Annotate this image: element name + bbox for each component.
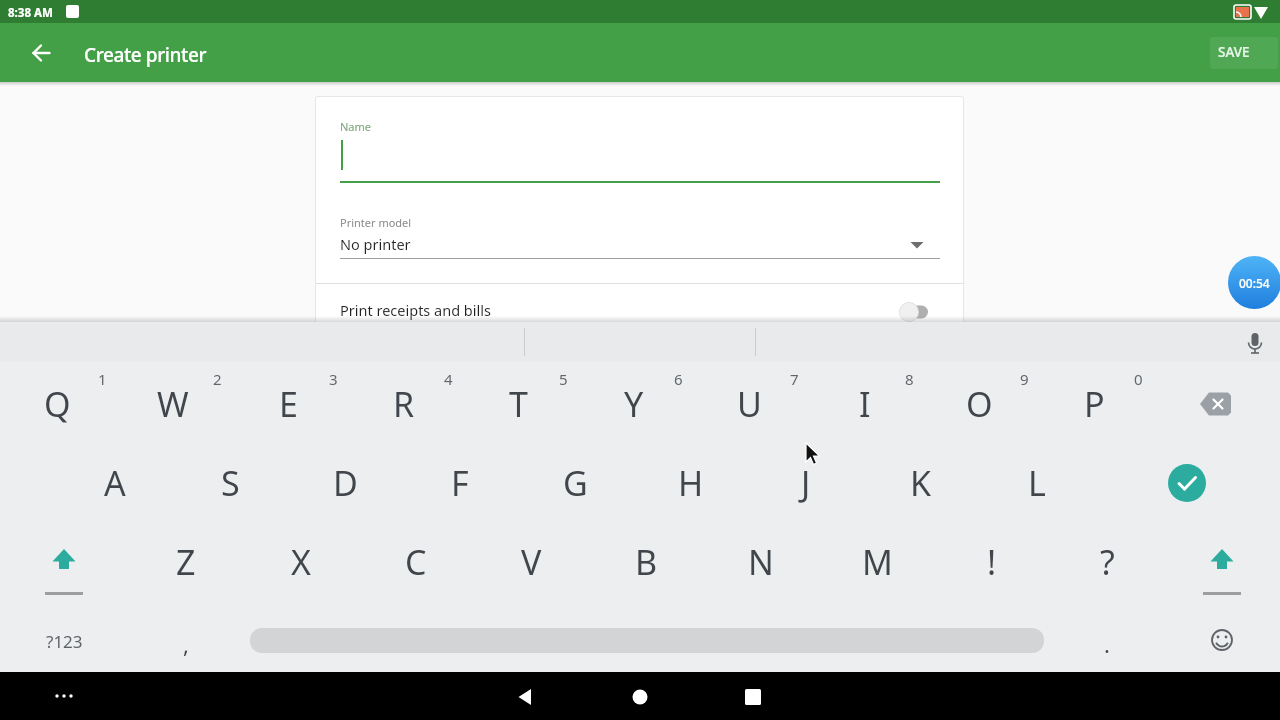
staticText: U <box>737 381 762 427</box>
button[interactable] <box>340 210 940 262</box>
staticText: F <box>451 460 469 506</box>
staticText: Print receipts and bills <box>340 300 491 320</box>
staticText: Y <box>624 381 644 427</box>
button[interactable] <box>44 676 84 716</box>
staticText: J <box>801 460 811 506</box>
button[interactable]: Y <box>577 366 691 442</box>
staticText: . <box>1104 629 1110 659</box>
button[interactable]: L <box>980 445 1094 521</box>
staticText: 00:54 <box>1239 275 1270 291</box>
button[interactable] <box>1159 455 1215 511</box>
button[interactable]: Z <box>129 524 243 600</box>
staticText: L <box>1028 460 1046 506</box>
staticText: Name <box>340 119 372 134</box>
button[interactable]: ?123 <box>19 611 109 671</box>
staticText: 9 <box>1020 369 1029 389</box>
staticText: 7 <box>790 369 799 389</box>
staticText: E <box>279 381 298 427</box>
staticText: M <box>862 539 893 585</box>
staticText: I <box>859 381 871 427</box>
button[interactable] <box>340 120 940 180</box>
button[interactable]: Q <box>0 366 114 442</box>
button[interactable]: I <box>808 366 922 442</box>
button[interactable]: M <box>820 524 934 600</box>
button[interactable]: V <box>474 524 588 600</box>
button[interactable]: U <box>692 366 806 442</box>
staticText: X <box>291 539 311 585</box>
staticText: S <box>221 460 240 506</box>
staticText: ?123 <box>46 630 83 653</box>
button[interactable]: X <box>244 524 358 600</box>
staticText: 0 <box>1134 369 1143 389</box>
button[interactable]: R <box>347 366 461 442</box>
button[interactable] <box>504 674 550 718</box>
staticText: D <box>333 460 358 506</box>
button[interactable]: S <box>173 445 287 521</box>
staticText: Q <box>44 381 71 427</box>
staticText: K <box>910 460 932 506</box>
staticText: 1 <box>98 369 107 389</box>
button[interactable]: P <box>1037 366 1151 442</box>
staticText: Z <box>176 539 196 585</box>
button[interactable]: T <box>461 366 575 442</box>
staticText: C <box>405 539 427 585</box>
staticText: O <box>966 381 993 427</box>
button[interactable]: F <box>403 445 517 521</box>
staticText: 4 <box>444 369 453 389</box>
staticText: ? <box>1100 539 1115 585</box>
staticText: SAVE <box>1218 43 1250 61</box>
staticText: W <box>157 381 189 427</box>
button[interactable]: J <box>749 445 863 521</box>
button[interactable]: D <box>288 445 402 521</box>
staticText: P <box>1084 381 1105 427</box>
button[interactable]: SAVE <box>1199 32 1269 72</box>
staticText: 5 <box>559 369 568 389</box>
button[interactable] <box>36 534 92 590</box>
button[interactable]: ? <box>1050 524 1164 600</box>
staticText: , <box>183 629 189 659</box>
button[interactable] <box>1243 330 1267 358</box>
staticText: N <box>748 539 774 585</box>
staticText: No printer <box>340 234 411 254</box>
button[interactable] <box>23 35 59 71</box>
staticText: 2 <box>213 369 222 389</box>
button[interactable]: A <box>58 445 172 521</box>
staticText: R <box>393 381 415 427</box>
staticText: Printer model <box>340 215 412 230</box>
button[interactable]: 00:54 <box>1228 256 1280 309</box>
button[interactable]: E <box>231 366 345 442</box>
button[interactable] <box>1194 612 1250 668</box>
button[interactable]: G <box>518 445 632 521</box>
button[interactable] <box>1194 534 1250 590</box>
button[interactable]: B <box>589 524 703 600</box>
button[interactable]: K <box>864 445 978 521</box>
button[interactable]: W <box>116 366 230 442</box>
staticText: T <box>509 381 528 427</box>
button[interactable] <box>730 674 776 718</box>
staticText: 3 <box>329 369 338 389</box>
staticText: G <box>563 460 588 506</box>
button[interactable]: , <box>141 614 231 674</box>
staticText: B <box>635 539 658 585</box>
button[interactable] <box>617 674 663 718</box>
staticText: H <box>678 460 704 506</box>
staticText: ! <box>987 539 997 585</box>
button[interactable]: . <box>1062 614 1152 674</box>
button[interactable]: N <box>704 524 818 600</box>
button[interactable]: ! <box>935 524 1049 600</box>
staticText: 8:38 AM <box>8 5 53 21</box>
staticText: 6 <box>674 369 683 389</box>
staticText: Create printer <box>84 42 207 68</box>
button[interactable]: H <box>634 445 748 521</box>
button[interactable]: O <box>922 366 1036 442</box>
staticText: A <box>104 460 126 506</box>
staticText: 8 <box>905 369 914 389</box>
button[interactable]: C <box>359 524 473 600</box>
button[interactable] <box>340 292 940 322</box>
button[interactable] <box>1187 376 1243 432</box>
staticText: V <box>521 539 542 585</box>
